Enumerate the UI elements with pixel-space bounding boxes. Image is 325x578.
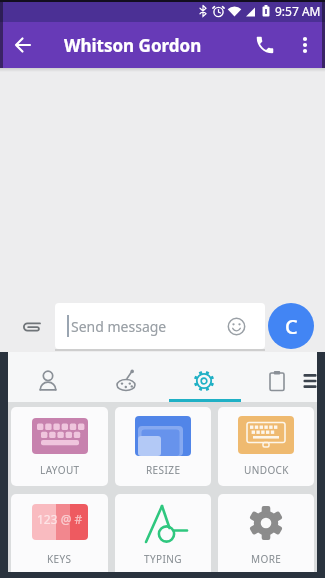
button[interactable] <box>34 367 62 395</box>
button[interactable]: TYPING <box>115 494 211 572</box>
staticText: Whitson Gordon <box>64 34 202 57</box>
staticText: TYPING <box>144 552 182 566</box>
button[interactable]: RESIZE <box>115 407 211 486</box>
staticText: 9:57 AM <box>275 3 321 19</box>
button[interactable] <box>190 367 218 395</box>
button[interactable]: LAYOUT <box>11 407 108 486</box>
button[interactable]: 123 @ # <box>11 494 108 572</box>
staticText: 123 @ # <box>37 511 83 527</box>
button[interactable] <box>296 367 324 395</box>
button[interactable] <box>17 313 45 341</box>
button[interactable] <box>263 367 291 395</box>
button[interactable] <box>8 30 38 60</box>
staticText: UNDOCK <box>244 463 289 477</box>
button[interactable]: C <box>268 303 314 349</box>
button[interactable] <box>249 29 281 61</box>
staticText: LAYOUT <box>40 463 80 477</box>
button[interactable] <box>291 31 319 59</box>
staticText: KEYS <box>47 552 72 566</box>
button[interactable] <box>225 315 247 337</box>
button[interactable]: Send message <box>55 303 265 349</box>
staticText: MORE <box>251 552 282 566</box>
button[interactable] <box>112 367 140 395</box>
staticText: Send message <box>71 317 167 336</box>
button[interactable]: MORE <box>218 494 314 572</box>
staticText: RESIZE <box>146 463 181 477</box>
staticText: C <box>285 313 298 340</box>
button[interactable]: UNDOCK <box>218 407 314 486</box>
